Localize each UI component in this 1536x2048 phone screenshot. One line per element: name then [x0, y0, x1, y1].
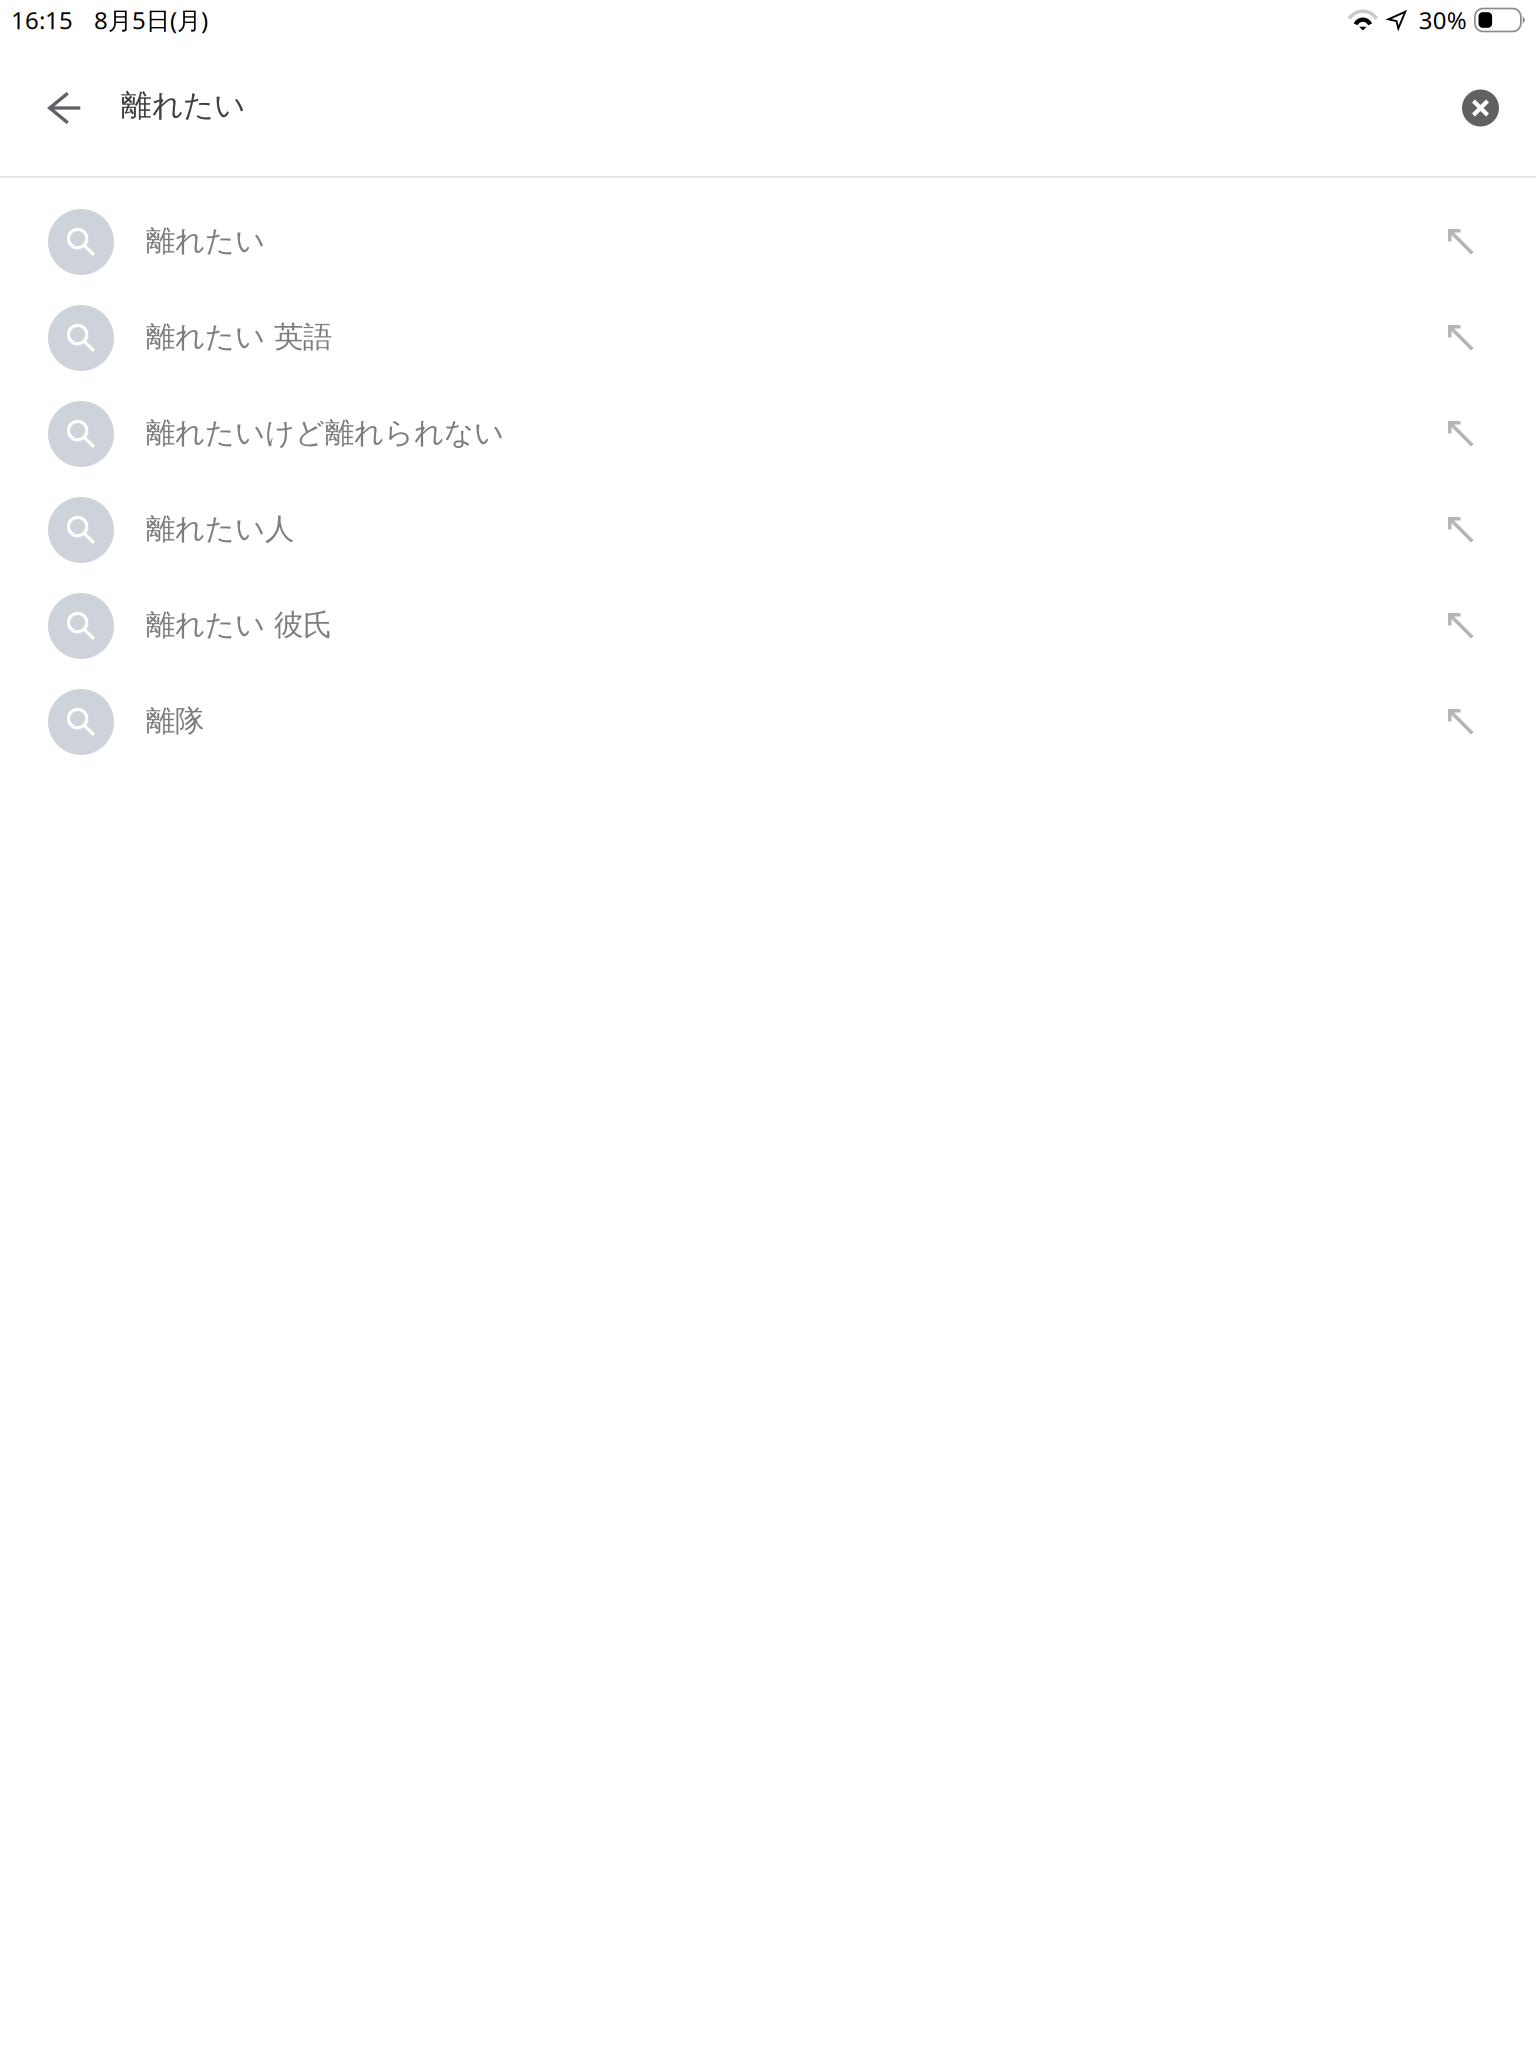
staticText: 離れたい 英語 — [146, 319, 332, 355]
button[interactable]: 離れたい 英語 — [0, 290, 1536, 386]
staticText: 離れたい 彼氏 — [146, 607, 332, 643]
button[interactable]: 離れたい人 — [0, 482, 1536, 578]
button[interactable]: 離れたいけど離れられない — [0, 386, 1536, 482]
button[interactable]: Search field, 離れたい — [90, 60, 1462, 156]
button[interactable]: Clear text — [1462, 78, 1536, 138]
staticText: 16:15 — [11, 4, 73, 36]
staticText: 8月5日(月) — [94, 4, 208, 36]
staticText: 離れたい — [146, 223, 265, 259]
button[interactable]: 離れたい 彼氏 — [0, 578, 1536, 674]
staticText: 離隊 — [146, 703, 204, 739]
button[interactable]: 離れたい — [0, 194, 1536, 290]
staticText: 30% — [1419, 4, 1467, 36]
button[interactable]: Back — [0, 78, 90, 138]
staticText: 離れたい — [121, 87, 245, 124]
staticText: 離れたい人 — [146, 511, 294, 547]
staticText: 離れたいけど離れられない — [146, 415, 504, 451]
button[interactable]: 離隊 — [0, 674, 1536, 770]
